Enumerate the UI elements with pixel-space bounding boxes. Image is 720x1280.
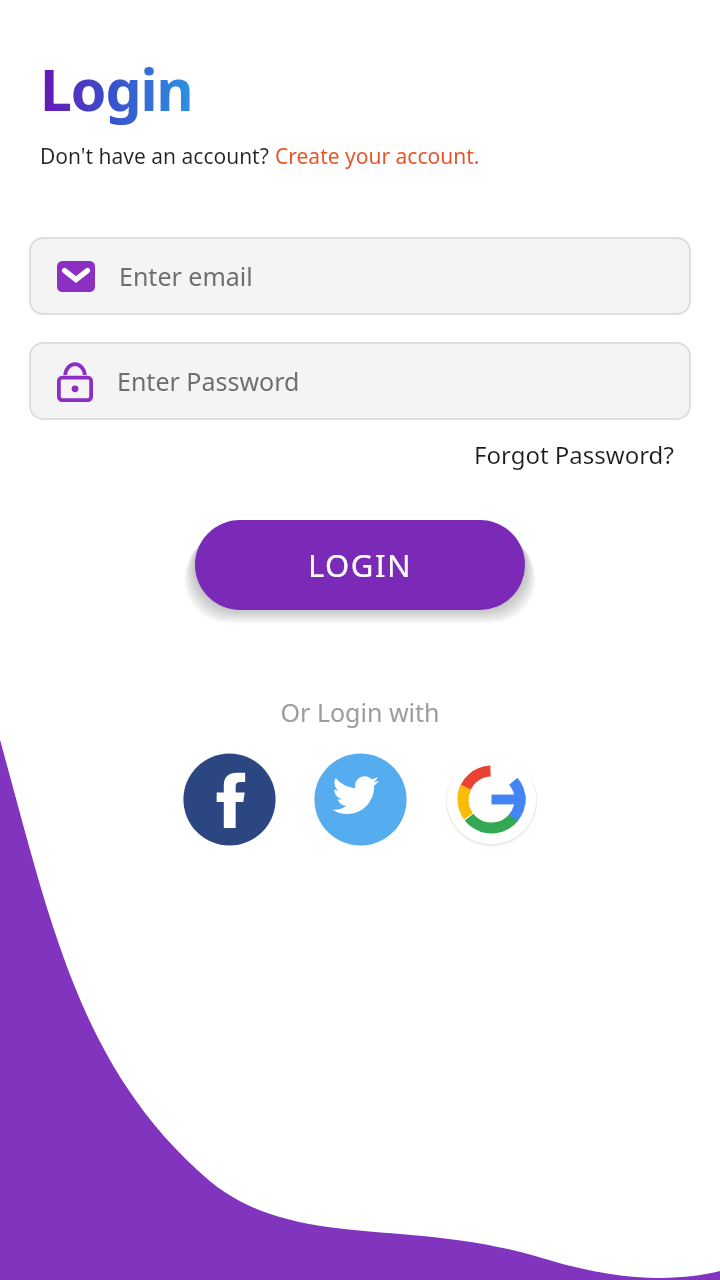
staticText: Enter Password: [117, 364, 300, 398]
staticText: Create your account.: [275, 142, 480, 171]
staticText: Login: [40, 50, 193, 128]
button[interactable]: Forgot Password?: [470, 434, 678, 475]
staticText: LOGIN: [308, 544, 412, 586]
staticText: Enter email: [119, 259, 253, 293]
staticText: Don't have an account?: [40, 142, 275, 171]
button[interactable]: Sign in with Google: [443, 751, 540, 848]
staticText: Forgot Password?: [474, 438, 674, 471]
button[interactable]: Enter email: [29, 237, 691, 315]
staticText: Or Login with: [0, 695, 720, 729]
button[interactable]: Create your account.: [275, 142, 480, 171]
button[interactable]: Enter Password: [29, 342, 691, 420]
button[interactable]: LOGIN: [195, 520, 525, 610]
button[interactable]: Sign in with Facebook: [181, 751, 278, 848]
button[interactable]: Sign in with Twitter: [312, 751, 409, 848]
